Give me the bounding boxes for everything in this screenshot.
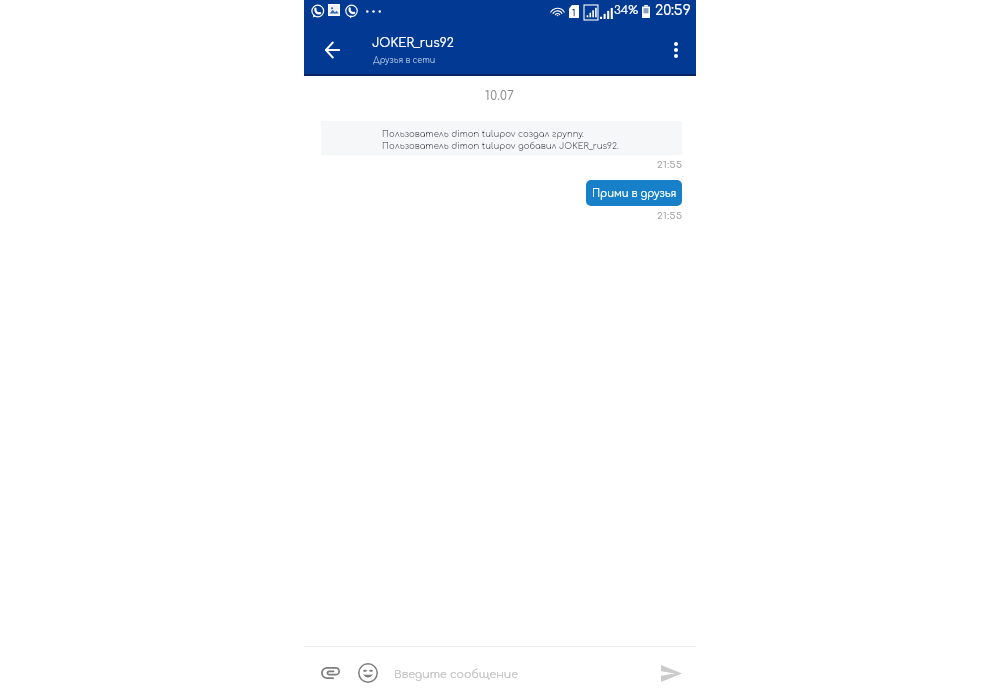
staticText: 1 bbox=[572, 8, 576, 18]
staticText: Введите сообщение bbox=[394, 668, 518, 680]
button[interactable]: More options bbox=[660, 34, 692, 66]
staticText: Друзья в сети bbox=[373, 56, 436, 65]
staticText: 21:55 bbox=[657, 160, 683, 171]
button[interactable]: Emoji bbox=[356, 661, 380, 685]
staticText: Пользователь dimon tulupov создал группу… bbox=[382, 130, 584, 139]
staticText: 10.07 bbox=[485, 89, 515, 102]
staticText: 34% bbox=[614, 4, 639, 17]
staticText: JOKER_rus92 bbox=[372, 36, 454, 49]
button[interactable]: Прими в друзья bbox=[586, 180, 682, 206]
staticText: 21:55 bbox=[657, 211, 683, 222]
button[interactable]: Back bbox=[316, 34, 348, 66]
button[interactable]: Send bbox=[655, 657, 687, 689]
staticText: 20:59 bbox=[655, 3, 691, 19]
staticText: Прими в друзья bbox=[592, 188, 677, 199]
button[interactable]: Attach file bbox=[318, 661, 342, 685]
staticText: Пользователь dimon tulupov добавил JOKER… bbox=[382, 142, 619, 151]
